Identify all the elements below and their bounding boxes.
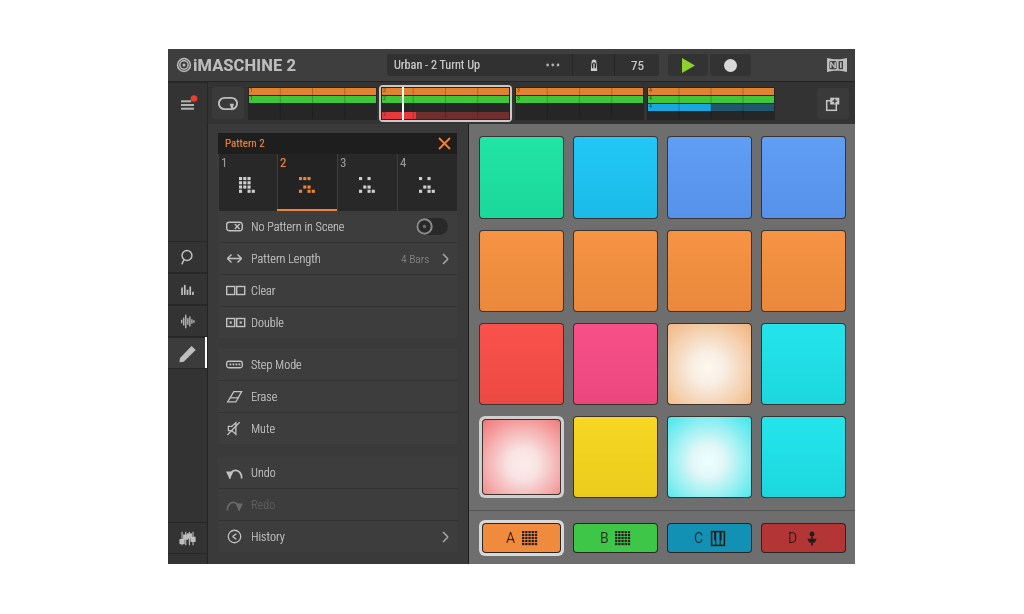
button[interactable]: 3	[337, 154, 397, 211]
button[interactable]: 1	[248, 87, 377, 120]
staticText: 1	[250, 94, 253, 101]
button[interactable]: Add scene	[817, 88, 849, 119]
button[interactable]: Close	[433, 133, 455, 154]
staticText: 4 Bars	[401, 252, 430, 265]
button[interactable]	[762, 137, 845, 218]
staticText: 4	[649, 102, 652, 109]
staticText: 2	[383, 110, 386, 117]
button[interactable]: Erase	[218, 381, 457, 412]
staticText: Urban - 2 Turnt Up	[394, 58, 481, 72]
button[interactable]	[762, 231, 845, 311]
button[interactable]: Sampler	[168, 305, 207, 337]
staticText: 4	[649, 94, 652, 101]
button[interactable]: A	[483, 524, 560, 552]
button[interactable]: History	[218, 521, 457, 552]
button[interactable]: Double	[218, 307, 457, 338]
button[interactable]	[574, 417, 657, 497]
staticText: Pattern Length	[251, 252, 321, 266]
staticText: 3	[340, 155, 347, 170]
staticText: 4	[649, 86, 652, 93]
staticText: Step Mode	[251, 358, 302, 372]
button[interactable]: 2	[381, 87, 510, 120]
button[interactable]: Arrange	[168, 273, 207, 305]
button[interactable]: Urban - 2 Turnt Up	[387, 54, 659, 76]
staticText: Undo	[251, 466, 276, 480]
staticText: 2	[383, 94, 386, 101]
staticText: 2	[383, 86, 386, 93]
staticText: History	[251, 530, 285, 544]
button[interactable]: Mute	[218, 413, 457, 444]
staticText: Erase	[251, 390, 278, 404]
staticText: 1	[250, 86, 253, 93]
staticText: 75	[631, 58, 644, 73]
button[interactable]	[480, 324, 563, 404]
staticText: Clear	[251, 284, 276, 298]
button[interactable]	[762, 417, 845, 497]
button[interactable]: D	[762, 524, 845, 552]
button[interactable]	[574, 231, 657, 311]
button[interactable]: Browser	[168, 82, 207, 124]
button[interactable]	[668, 324, 751, 404]
button[interactable]	[574, 137, 657, 218]
button[interactable]: Clear	[218, 275, 457, 306]
button[interactable]: Browse	[168, 241, 207, 273]
button[interactable]: 1	[218, 154, 277, 211]
button[interactable]	[668, 417, 751, 497]
staticText: 4	[400, 155, 407, 170]
staticText: Double	[251, 316, 284, 330]
staticText: No Pattern in Scene	[251, 220, 345, 234]
button[interactable]: Redo	[218, 489, 457, 520]
button[interactable]: 4	[397, 154, 457, 211]
button[interactable]: Play	[668, 54, 708, 76]
button[interactable]: 3	[515, 87, 644, 120]
button[interactable]: Loop	[212, 87, 244, 119]
button[interactable]: 2	[277, 154, 337, 211]
button[interactable]	[483, 420, 560, 494]
button[interactable]: Edit	[168, 337, 207, 369]
button[interactable]	[668, 231, 751, 311]
staticText: C	[694, 530, 704, 546]
staticText: B	[600, 530, 609, 546]
staticText: 1	[221, 155, 228, 170]
staticText: Mute	[251, 422, 276, 436]
button[interactable]: Pattern Length	[218, 243, 457, 274]
button[interactable]: B	[574, 524, 657, 552]
staticText: D	[788, 530, 798, 546]
button[interactable]	[668, 137, 751, 218]
button[interactable]	[574, 324, 657, 404]
staticText: 3	[517, 94, 520, 101]
staticText: A	[506, 530, 516, 546]
button[interactable]	[762, 324, 845, 404]
button[interactable]	[480, 137, 563, 218]
button[interactable]: Mixer	[168, 522, 207, 554]
staticText: iMASCHINE 2	[193, 56, 297, 75]
staticText: 2	[280, 155, 287, 170]
button[interactable]: 4	[647, 87, 775, 120]
button[interactable]	[480, 231, 563, 311]
staticText: Redo	[251, 498, 276, 512]
button[interactable]: Record	[710, 54, 751, 76]
button[interactable]: Undo	[218, 457, 457, 488]
button[interactable]: Step Mode	[218, 349, 457, 380]
staticText: Pattern 2	[225, 137, 265, 150]
staticText: 3	[517, 86, 520, 93]
button[interactable]: C	[668, 524, 751, 552]
button[interactable]: No Pattern in Scene	[218, 211, 457, 242]
